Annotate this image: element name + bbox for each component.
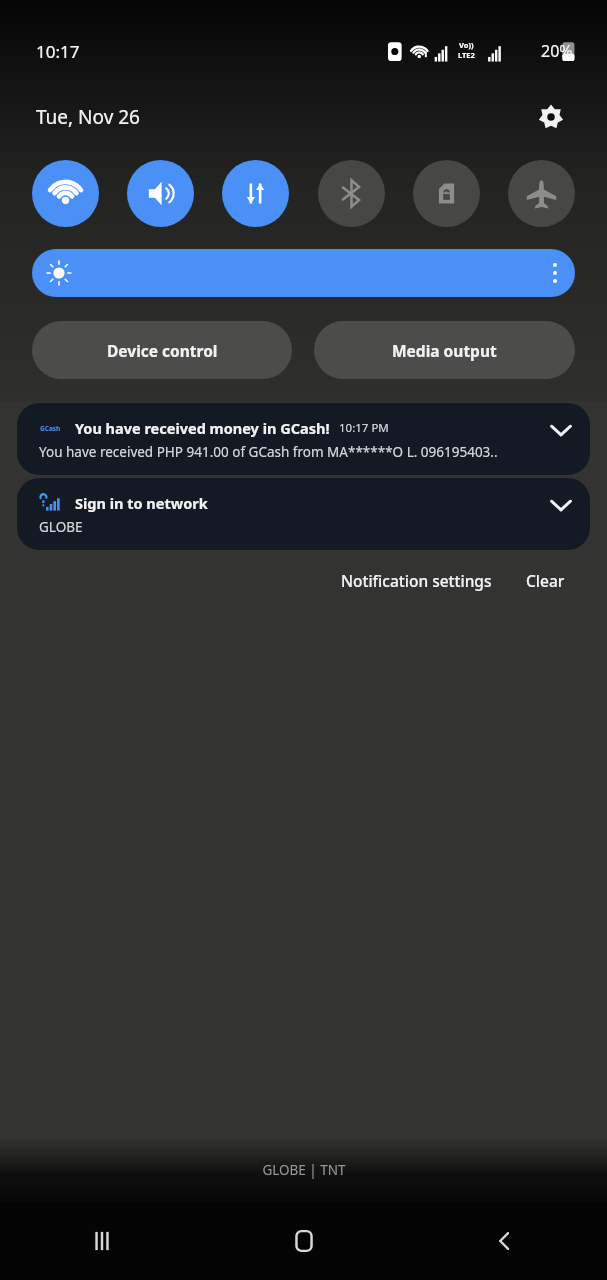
button[interactable]: Expand notification bbox=[542, 411, 580, 449]
staticText: Media output bbox=[392, 340, 497, 361]
button[interactable]: Bluetooth bbox=[318, 160, 385, 227]
staticText: GLOBE bbox=[39, 518, 83, 536]
button[interactable]: Notification settings bbox=[335, 562, 498, 599]
staticText: You have received PHP 941.00 of GCash fr… bbox=[39, 443, 498, 461]
button[interactable]: Mobile data bbox=[222, 160, 289, 227]
staticText: 10:17 PM bbox=[339, 420, 389, 436]
button[interactable]: Media output bbox=[314, 321, 575, 379]
staticText: GCash bbox=[40, 424, 61, 433]
staticText: You have received money in GCash! bbox=[75, 418, 330, 438]
button[interactable]: Airplane mode bbox=[508, 160, 575, 227]
staticText: 20% bbox=[541, 40, 573, 62]
staticText: Tue, Nov 26 bbox=[36, 104, 140, 130]
staticText: Device control bbox=[107, 340, 218, 361]
staticText: Notification settings bbox=[341, 570, 492, 591]
button[interactable]: SIM card lock bbox=[413, 160, 480, 227]
staticText: Sign in to network bbox=[75, 493, 208, 513]
staticText: Clear bbox=[526, 570, 565, 591]
staticText: LTE2 bbox=[458, 50, 475, 60]
button[interactable]: Recent apps bbox=[0, 1202, 203, 1280]
button[interactable]: Brightness bbox=[32, 249, 575, 297]
button[interactable]: Home bbox=[203, 1202, 405, 1280]
button[interactable]: GCash notification bbox=[17, 403, 590, 475]
staticText: Vo)) bbox=[459, 40, 474, 50]
button[interactable]: Expand notification bbox=[542, 486, 580, 524]
button[interactable]: Wi-Fi bbox=[32, 160, 99, 227]
button[interactable]: Back bbox=[405, 1202, 607, 1280]
button[interactable]: Sound bbox=[127, 160, 194, 227]
button[interactable]: Clear bbox=[520, 562, 571, 599]
button[interactable]: Device control bbox=[32, 321, 292, 379]
button[interactable]: Sign in to network notification bbox=[17, 478, 590, 550]
staticText: GLOBE | TNT bbox=[262, 1161, 346, 1179]
button[interactable]: Settings bbox=[531, 97, 571, 137]
staticText: 10:17 bbox=[36, 40, 80, 63]
